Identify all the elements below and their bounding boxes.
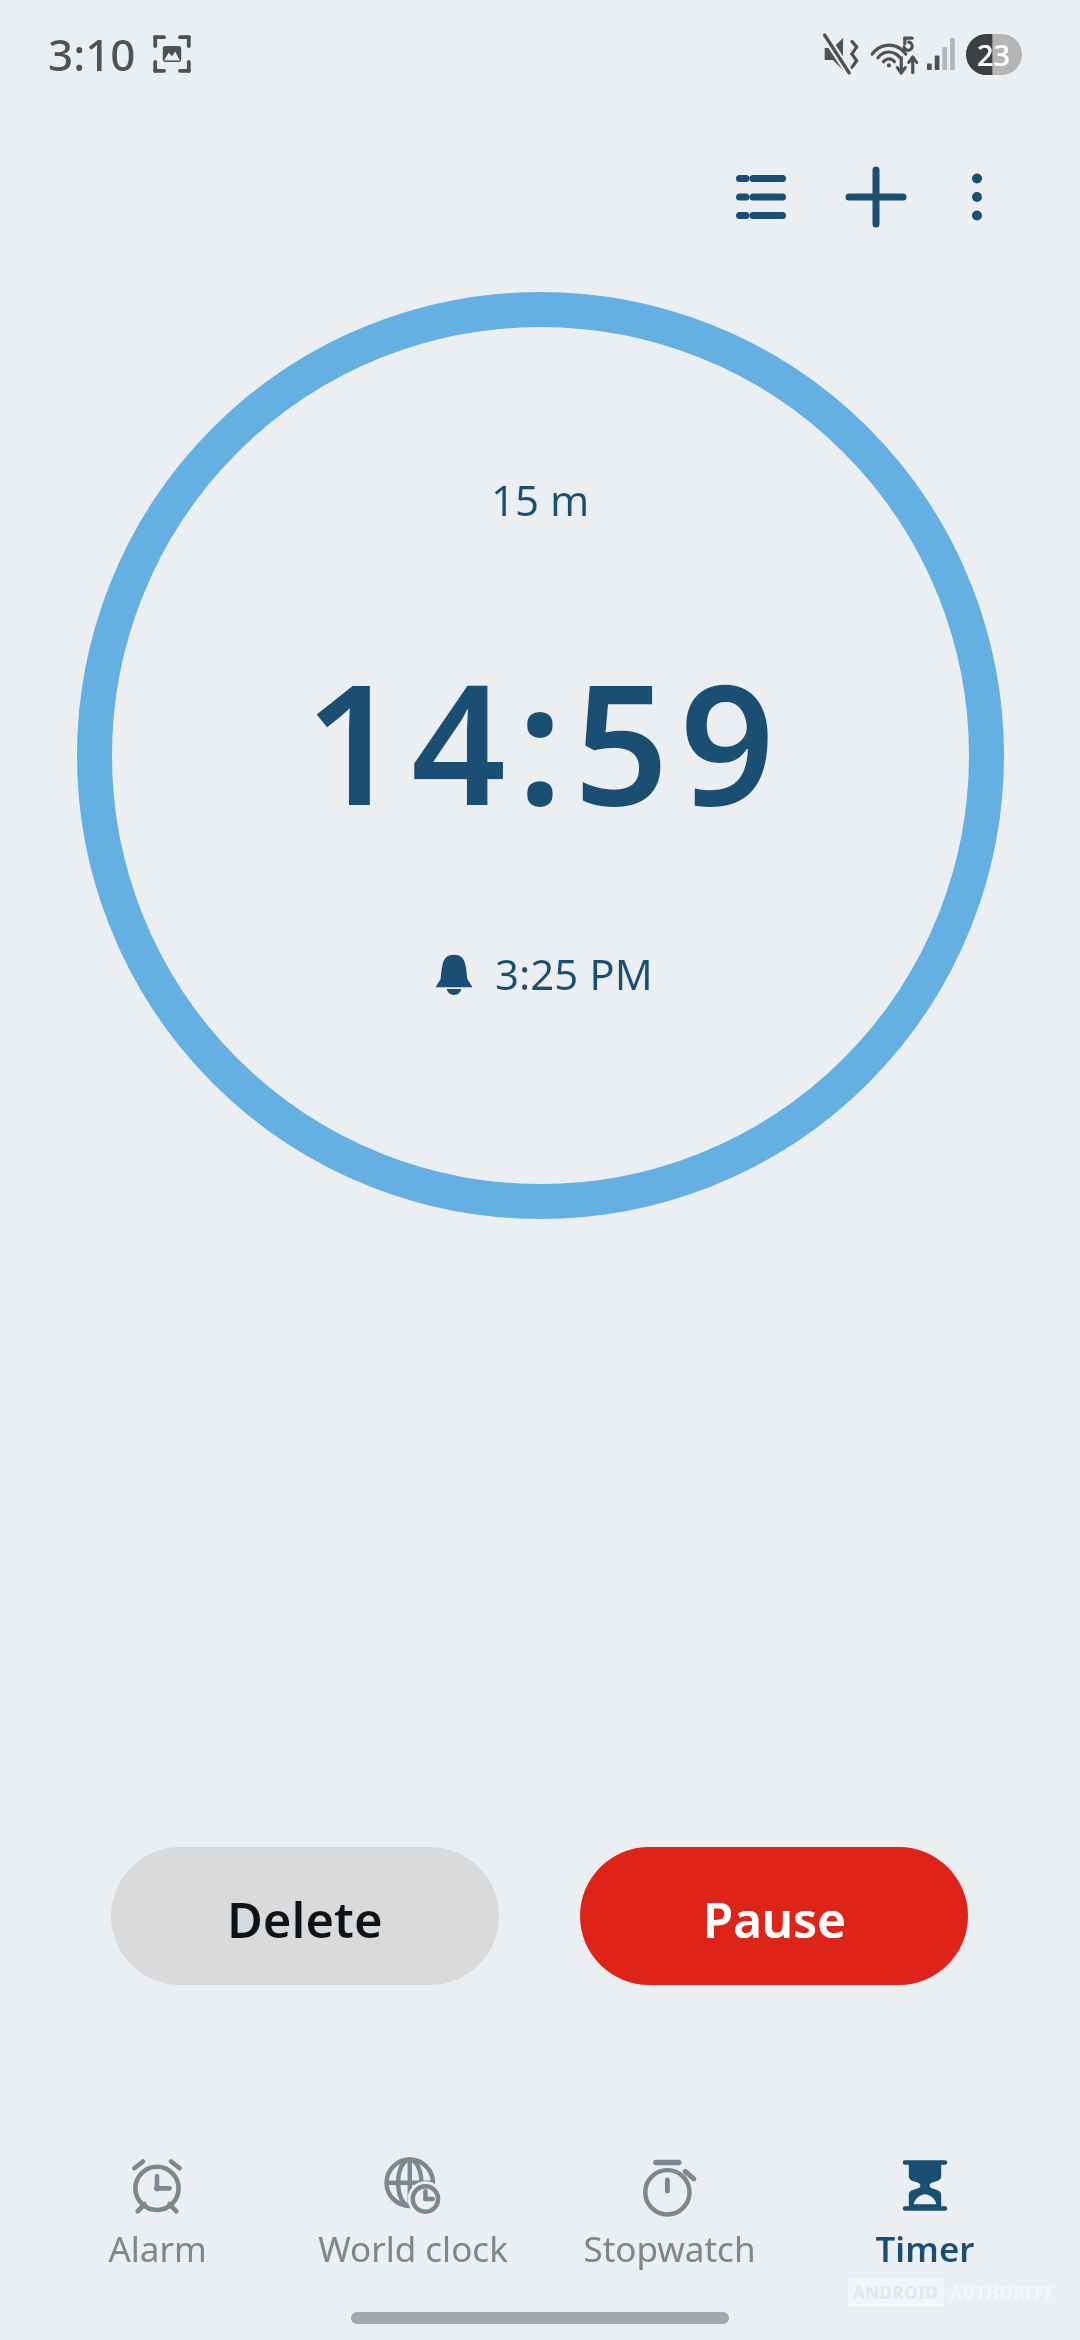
button[interactable]: Pause <box>580 1847 968 1985</box>
staticText: 23 <box>977 35 1011 74</box>
button[interactable]: Timer <box>797 2140 1053 2280</box>
staticText: ANDROID <box>853 2281 939 2304</box>
staticText: AUTHORITY <box>950 2281 1054 2304</box>
button[interactable]: Timer list <box>689 125 833 269</box>
staticText: Timer <box>875 2225 975 2273</box>
staticText: Delete <box>227 1886 383 1953</box>
button[interactable]: Add timer <box>804 125 948 269</box>
button[interactable]: Stopwatch <box>541 2140 797 2280</box>
staticText: 14:59 <box>305 628 786 854</box>
staticText: World clock <box>318 2225 508 2273</box>
button[interactable]: World clock <box>285 2140 541 2280</box>
button[interactable]: Delete <box>111 1847 499 1985</box>
staticText: Stopwatch <box>583 2225 756 2273</box>
staticText: 15 m <box>491 471 590 528</box>
staticText: 3:25 PM <box>495 945 653 1002</box>
button[interactable]: Alarm <box>29 2140 285 2280</box>
staticText: Alarm <box>108 2225 207 2273</box>
staticText: Pause <box>703 1886 846 1953</box>
staticText: 3:10 <box>48 24 136 84</box>
button[interactable]: More options <box>905 125 1049 269</box>
